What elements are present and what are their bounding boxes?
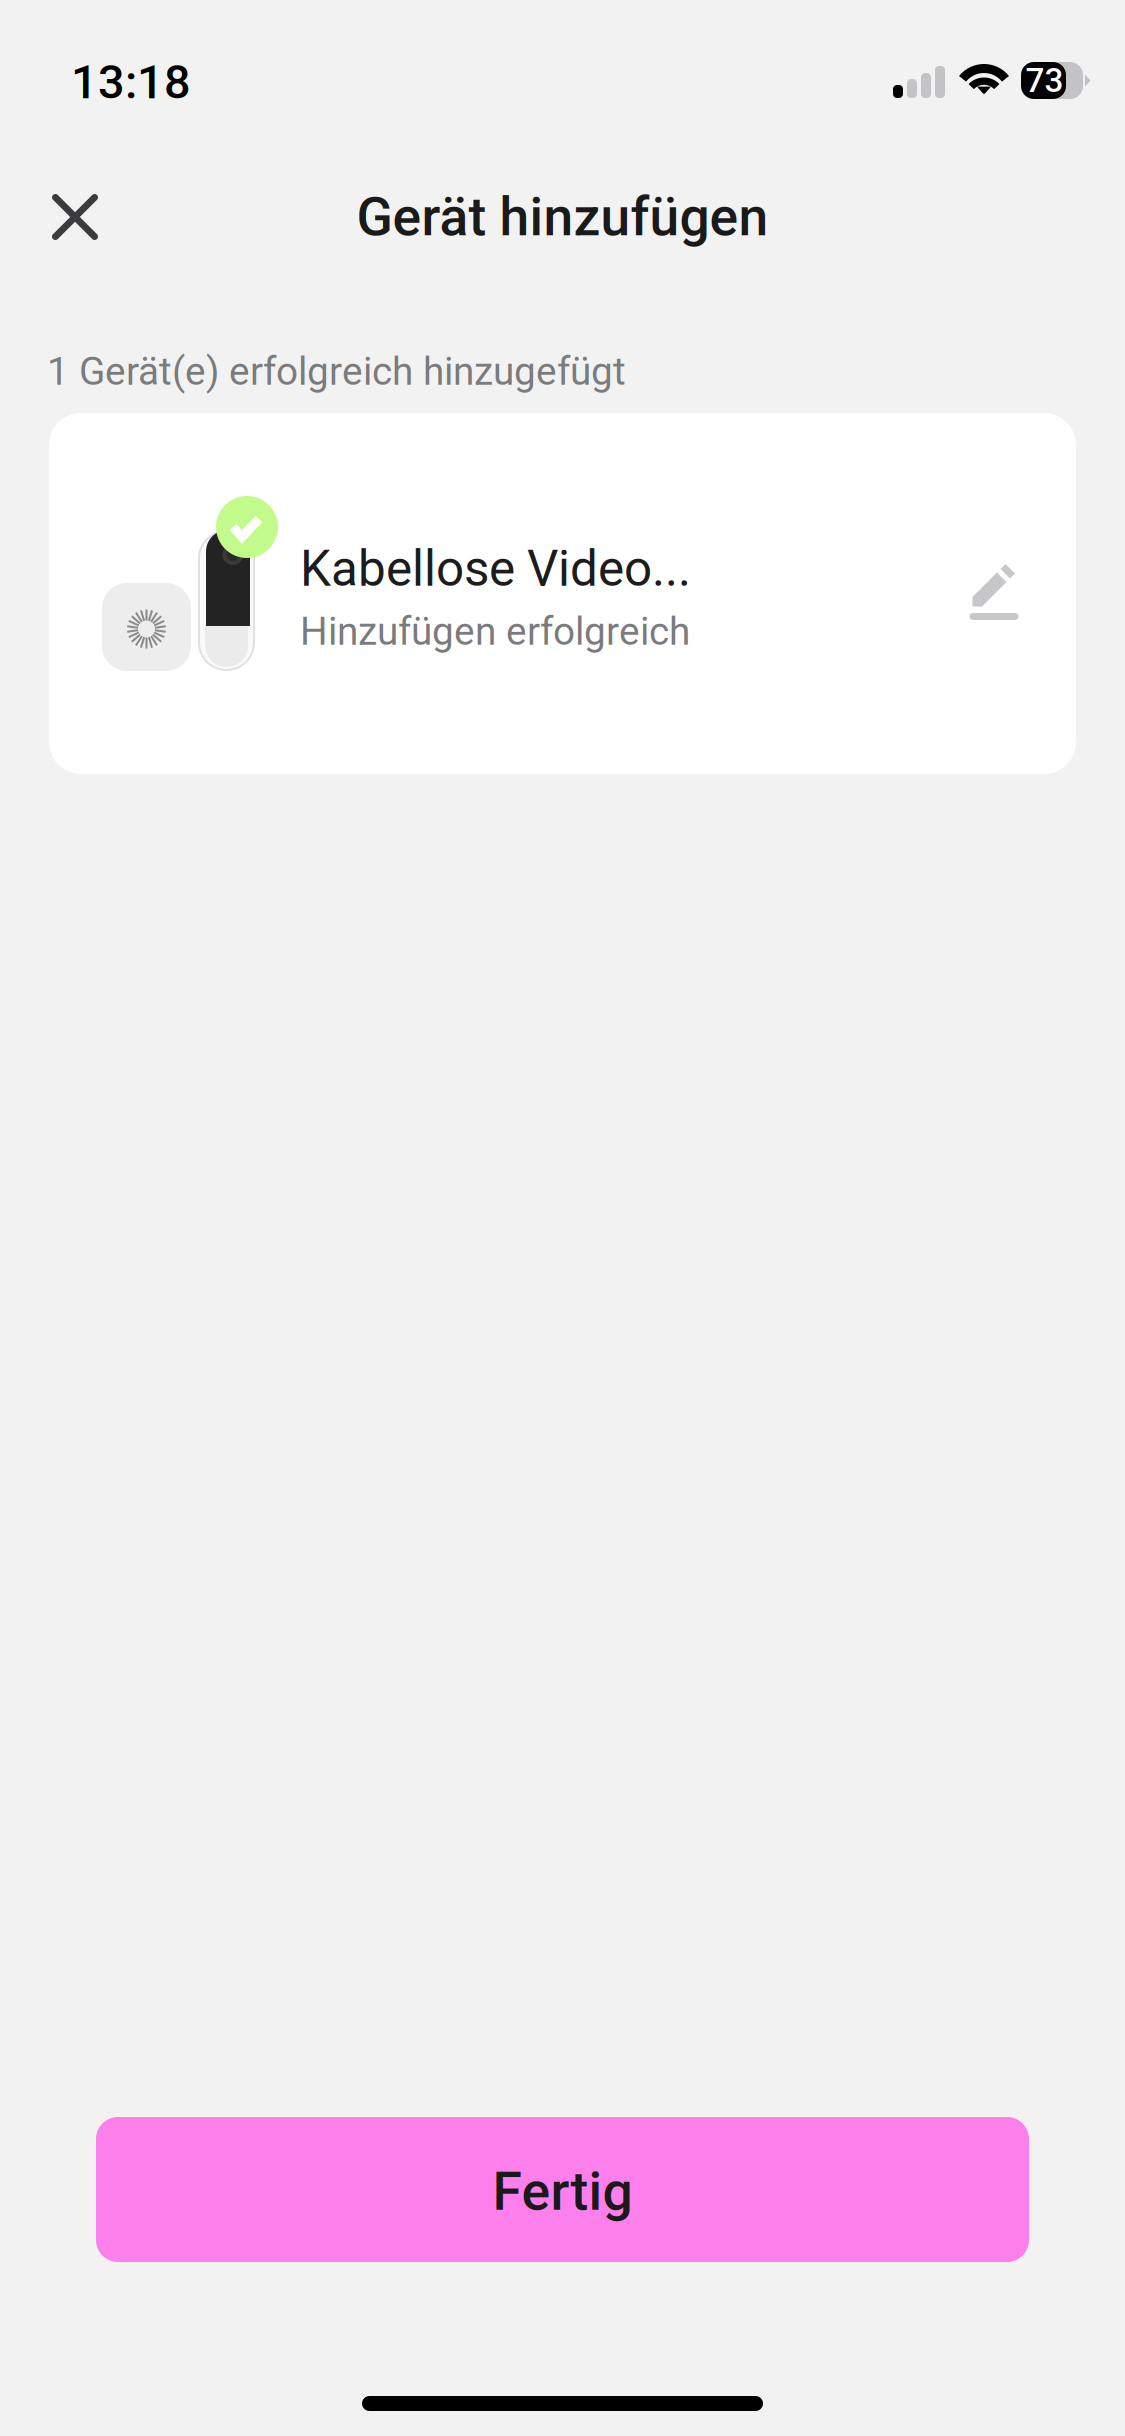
staticText: Hinzufügen erfolgreich <box>300 609 690 654</box>
button[interactable]: Bearbeiten <box>949 546 1045 642</box>
staticText: Gerät hinzufügen <box>356 186 768 248</box>
button[interactable]: Fertig <box>96 2117 1029 2262</box>
staticText: Kabellose Video... <box>300 540 691 598</box>
button[interactable]: Schließen <box>29 171 121 263</box>
staticText: 73 <box>1025 61 1063 100</box>
staticText: 1 Gerät(e) erfolgreich hinzugefügt <box>47 349 626 394</box>
staticText: Fertig <box>492 2160 632 2223</box>
staticText: 13:18 <box>71 55 191 110</box>
